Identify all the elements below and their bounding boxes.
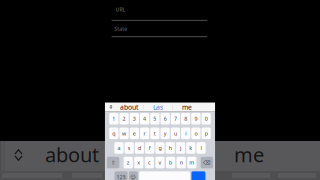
staticText: x <box>137 159 140 166</box>
button[interactable]: a <box>114 142 124 154</box>
button[interactable]: about <box>115 102 143 112</box>
staticText: v <box>158 159 161 166</box>
staticText: o <box>194 130 197 137</box>
button[interactable]: 5 <box>150 113 159 125</box>
button[interactable]: g <box>155 142 165 154</box>
button[interactable]: 7 <box>171 113 180 125</box>
button[interactable]: ⌫ <box>201 157 213 168</box>
staticText: Las <box>153 103 163 112</box>
button[interactable]: 2 <box>119 113 129 125</box>
staticText: f <box>149 144 151 151</box>
staticText: me <box>234 141 264 168</box>
button[interactable]: h <box>166 142 175 154</box>
staticText: me <box>182 103 192 112</box>
button[interactable]: y <box>160 127 170 139</box>
staticText: z <box>127 159 130 166</box>
button[interactable]: k <box>186 142 195 154</box>
staticText: e <box>133 130 136 137</box>
staticText: y <box>164 130 167 137</box>
button[interactable]: c <box>145 157 154 168</box>
button[interactable]: r <box>140 127 149 139</box>
staticText: 123 <box>117 174 126 180</box>
staticText: k <box>189 144 192 151</box>
button[interactable]: ⇧ <box>107 157 119 168</box>
button[interactable]: x <box>134 157 143 168</box>
button[interactable]: 9 <box>191 113 201 125</box>
staticText: 1 <box>112 115 115 122</box>
button[interactable]: b <box>166 157 175 168</box>
staticText: w <box>122 130 126 137</box>
staticText: ☺ <box>130 174 136 180</box>
staticText: 2 <box>123 115 126 122</box>
button[interactable]: z <box>124 157 133 168</box>
staticText: 3 <box>133 115 136 122</box>
button[interactable]: 6 <box>160 113 170 125</box>
staticText: n <box>180 159 183 166</box>
staticText: s <box>128 144 131 151</box>
button[interactable]: Expand predictions <box>108 102 115 112</box>
staticText: 9 <box>194 115 197 122</box>
button[interactable]: 3 <box>130 113 139 125</box>
button[interactable]: Las <box>144 102 172 112</box>
staticText: g <box>158 144 161 151</box>
button[interactable]: me <box>234 141 264 171</box>
staticText: ⌫ <box>203 159 211 166</box>
button[interactable]: d <box>135 142 144 154</box>
staticText: l <box>200 144 201 151</box>
staticText: p <box>205 130 208 137</box>
button[interactable] <box>191 171 205 180</box>
staticText: State <box>114 25 127 32</box>
button[interactable]: 4 <box>140 113 149 125</box>
staticText: ⇧ <box>111 159 115 166</box>
staticText: j <box>180 144 181 151</box>
button[interactable]: URL <box>108 6 207 21</box>
staticText: u <box>174 130 177 137</box>
staticText: c <box>148 159 151 166</box>
button[interactable]: v <box>155 157 165 168</box>
staticText: b <box>169 159 172 166</box>
button[interactable]: 8 <box>181 113 190 125</box>
button[interactable]: n <box>177 157 186 168</box>
button[interactable]: l <box>196 142 206 154</box>
button[interactable]: j <box>176 142 185 154</box>
button[interactable]: e <box>130 127 139 139</box>
button[interactable] <box>139 171 190 180</box>
button[interactable]: about <box>45 141 99 171</box>
button[interactable]: 123 <box>115 171 128 180</box>
staticText: 5 <box>153 115 156 122</box>
button[interactable]: s <box>125 142 134 154</box>
button[interactable]: p <box>201 127 211 139</box>
button[interactable]: u <box>171 127 180 139</box>
button[interactable]: State <box>108 25 207 37</box>
staticText: 8 <box>184 115 187 122</box>
staticText: m <box>189 159 194 166</box>
staticText: 0 <box>205 115 208 122</box>
staticText: r <box>144 130 146 137</box>
button[interactable]: m <box>187 157 196 168</box>
staticText: URL <box>115 6 125 13</box>
staticText: 7 <box>174 115 177 122</box>
staticText: 4 <box>143 115 146 122</box>
button[interactable]: t <box>150 127 159 139</box>
button[interactable]: f <box>145 142 154 154</box>
button[interactable]: ☺ <box>129 171 138 180</box>
staticText: i <box>185 130 186 137</box>
staticText: about <box>120 103 138 112</box>
staticText: 6 <box>164 115 167 122</box>
button[interactable]: me <box>173 102 201 112</box>
button[interactable]: 0 <box>201 113 211 125</box>
staticText: t <box>154 130 156 137</box>
staticText: h <box>169 144 172 151</box>
staticText: d <box>138 144 141 151</box>
button[interactable]: w <box>119 127 129 139</box>
staticText: a <box>117 144 120 151</box>
staticText: q <box>112 130 115 137</box>
button[interactable]: q <box>109 127 118 139</box>
button[interactable]: Expand predictions <box>12 141 25 171</box>
staticText: about <box>45 141 99 168</box>
button[interactable]: 1 <box>109 113 118 125</box>
button[interactable]: i <box>181 127 190 139</box>
button[interactable]: o <box>191 127 201 139</box>
